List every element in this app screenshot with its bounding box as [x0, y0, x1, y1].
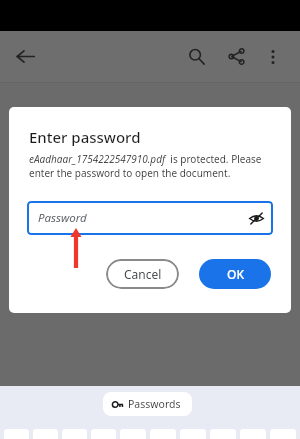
button[interactable]: More options: [256, 40, 289, 73]
button[interactable]: Search: [180, 40, 213, 73]
staticText: Cancel: [124, 266, 162, 282]
button[interactable]: Passwords: [103, 392, 192, 416]
button[interactable]: Password: [27, 201, 273, 235]
staticText: Passwords: [128, 397, 181, 411]
staticText: Enter password: [29, 127, 141, 147]
button[interactable]: Share: [220, 40, 253, 73]
button[interactable]: OK: [199, 259, 271, 289]
button[interactable]: Cancel: [106, 259, 179, 289]
staticText: OK: [227, 266, 244, 282]
staticText: Password: [38, 210, 87, 226]
staticText: eAadhaar_1754222547910.pdf is protected.…: [29, 152, 274, 180]
button[interactable]: Show password: [245, 207, 267, 229]
button[interactable]: Back: [9, 40, 42, 73]
